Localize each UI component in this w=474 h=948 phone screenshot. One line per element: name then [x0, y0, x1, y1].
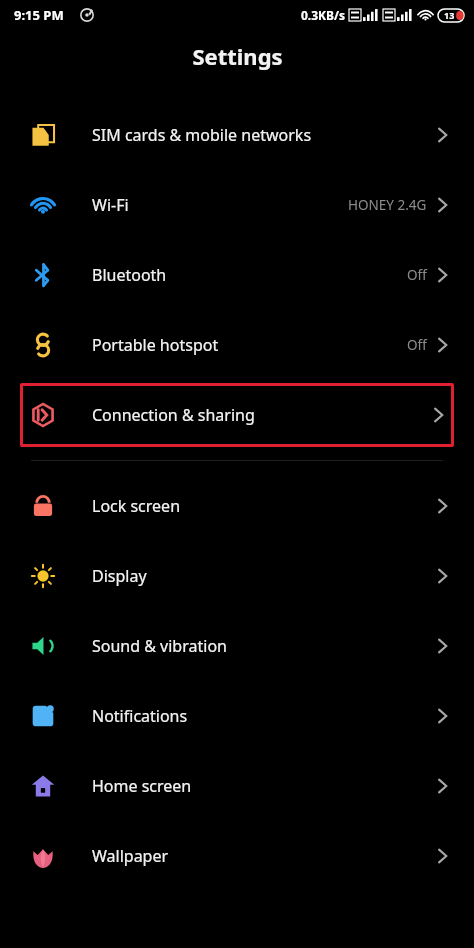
button[interactable]: Wallpaper	[0, 821, 474, 891]
staticText: 9:15 PM	[14, 6, 64, 24]
staticText: 13	[444, 9, 455, 21]
button[interactable]: Bluetooth	[0, 240, 474, 310]
staticText: Sound & vibration	[92, 635, 227, 657]
staticText: Display	[92, 565, 147, 587]
staticText: Bluetooth	[92, 264, 167, 286]
staticText: Off	[407, 336, 427, 354]
button[interactable]: Lock screen	[0, 471, 474, 541]
staticText: Settings	[192, 41, 283, 71]
button[interactable]: Connection & sharing	[20, 383, 454, 447]
staticText: Notifications	[92, 705, 188, 727]
button[interactable]: SIM cards & mobile networks	[0, 100, 474, 170]
staticText: Portable hotspot	[92, 334, 219, 356]
button[interactable]: Portable hotspot	[0, 310, 474, 380]
button[interactable]: Notifications	[0, 681, 474, 751]
button[interactable]: Display	[0, 541, 474, 611]
staticText: 0.3KB/s	[301, 7, 346, 23]
button[interactable]: Home screen	[0, 751, 474, 821]
staticText: Connection & sharing	[92, 404, 255, 426]
staticText: Wallpaper	[92, 845, 169, 867]
staticText: HONEY 2.4G	[348, 196, 427, 214]
staticText: SIM cards & mobile networks	[92, 124, 312, 146]
staticText: Off	[407, 266, 427, 284]
button[interactable]: Sound & vibration	[0, 611, 474, 681]
staticText: Home screen	[92, 775, 192, 797]
staticText: Lock screen	[92, 495, 181, 517]
button[interactable]: Wi-Fi	[0, 170, 474, 240]
staticText: Wi-Fi	[92, 194, 129, 216]
